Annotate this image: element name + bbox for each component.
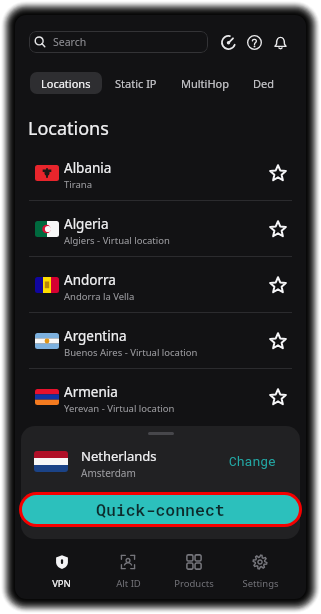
button[interactable]: Speed test bbox=[216, 30, 240, 54]
staticText: Change bbox=[229, 452, 276, 469]
staticText: Andorra la Vella bbox=[64, 290, 135, 303]
button[interactable]: Help bbox=[242, 30, 266, 54]
staticText: Search bbox=[53, 35, 87, 49]
staticText: VPN bbox=[52, 577, 71, 590]
button[interactable]: MultiHop bbox=[170, 72, 240, 94]
staticText: Alt ID bbox=[116, 577, 141, 590]
staticText: Products bbox=[174, 577, 214, 590]
button[interactable]: Algeria bbox=[15, 201, 306, 256]
staticText: Netherlands bbox=[81, 447, 157, 465]
staticText: Algiers - Virtual location bbox=[64, 234, 170, 247]
button[interactable]: Static IP bbox=[104, 72, 168, 94]
button[interactable]: Favorite Albania bbox=[264, 159, 292, 187]
button[interactable]: Argentina bbox=[15, 313, 306, 368]
button[interactable]: Alt ID bbox=[95, 539, 161, 599]
button[interactable]: Andorra bbox=[15, 257, 306, 312]
button[interactable]: Quick-connect bbox=[22, 495, 299, 524]
staticText: Tirana bbox=[64, 178, 92, 191]
button[interactable]: Notifications bbox=[268, 30, 292, 54]
button[interactable]: Favorite Argentina bbox=[264, 327, 292, 355]
staticText: Static IP bbox=[115, 76, 157, 91]
staticText: Amsterdam bbox=[81, 466, 136, 480]
button[interactable]: Settings bbox=[227, 539, 293, 599]
staticText: MultiHop bbox=[181, 76, 229, 91]
button[interactable]: Change bbox=[223, 444, 282, 477]
staticText: Argentina bbox=[64, 327, 127, 345]
staticText: Armenia bbox=[64, 383, 118, 401]
staticText: Buenos Aires - Virtual location bbox=[64, 346, 198, 359]
staticText: Albania bbox=[64, 159, 112, 177]
staticText: Andorra bbox=[64, 271, 116, 289]
button[interactable]: Favorite Algeria bbox=[264, 215, 292, 243]
button[interactable]: Armenia bbox=[15, 369, 306, 424]
staticText: Quick-connect bbox=[96, 499, 225, 521]
staticText: Locations bbox=[41, 76, 91, 91]
staticText: Yerevan - Virtual location bbox=[64, 402, 175, 415]
button[interactable]: Ded bbox=[242, 72, 285, 94]
staticText: Algeria bbox=[64, 215, 109, 233]
button[interactable]: Albania bbox=[15, 145, 306, 200]
staticText: Locations bbox=[28, 116, 109, 141]
button[interactable]: VPN bbox=[28, 539, 95, 599]
staticText: Ded bbox=[253, 76, 274, 91]
staticText: Settings bbox=[242, 577, 279, 590]
button[interactable]: Favorite Andorra bbox=[264, 271, 292, 299]
button[interactable]: Search bbox=[29, 31, 208, 53]
button[interactable]: Favorite Armenia bbox=[264, 383, 292, 411]
button[interactable]: Locations bbox=[30, 72, 102, 94]
button[interactable]: Products bbox=[161, 539, 227, 599]
